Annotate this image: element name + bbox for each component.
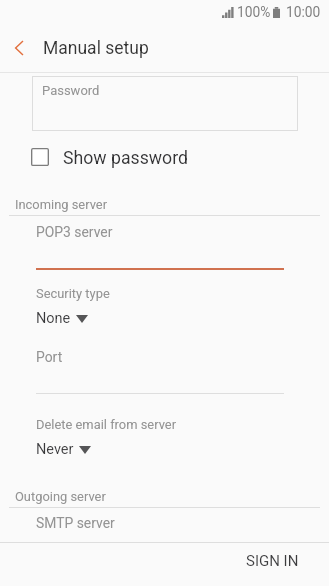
staticText: Security type [36, 286, 110, 301]
staticText: SMTP server [36, 515, 115, 531]
staticText: Password [42, 83, 100, 98]
staticText: POP3 server [36, 224, 113, 240]
staticText: Never [36, 441, 74, 458]
staticText: Delete email from server [36, 417, 177, 432]
staticText: Show password [63, 148, 189, 169]
other: Battery full [273, 7, 280, 18]
staticText: SIGN IN [246, 552, 299, 570]
button[interactable] [24, 342, 296, 370]
staticText: Outgoing server [15, 489, 106, 504]
staticText: None [36, 310, 71, 327]
button[interactable] [24, 509, 296, 537]
button[interactable]: Never [0, 439, 329, 459]
button[interactable]: Navigate up [0, 26, 38, 72]
staticText: Incoming server [15, 197, 108, 212]
button[interactable]: None [0, 308, 329, 328]
staticText: Manual setup [43, 38, 149, 59]
button[interactable]: Show password [0, 142, 329, 171]
staticText: Port [36, 349, 63, 365]
button[interactable]: Password [32, 76, 298, 131]
staticText: 100% [237, 4, 271, 18]
button[interactable]: SIGN IN [218, 540, 329, 586]
staticText: 10:00 [286, 4, 321, 18]
other: Cellular signal [222, 7, 233, 18]
button[interactable] [24, 218, 296, 246]
